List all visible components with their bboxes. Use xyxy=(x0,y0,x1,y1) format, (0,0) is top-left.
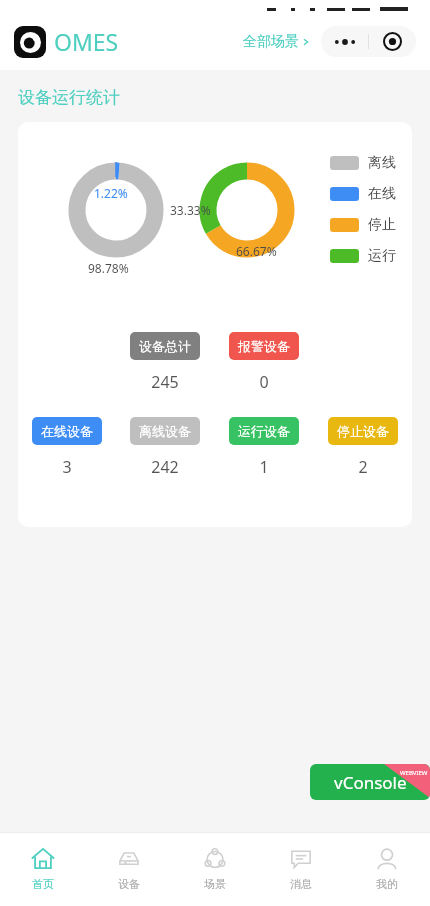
staticText: WEBVIEW xyxy=(400,769,428,777)
staticText: 全部场景 xyxy=(243,33,299,51)
button[interactable]: 报警设备 xyxy=(214,332,313,393)
staticText: vConsole xyxy=(334,771,407,794)
button[interactable]: 在线设备 xyxy=(18,417,116,478)
staticText: 我的 xyxy=(376,877,398,891)
button[interactable]: 运行设备 xyxy=(214,417,313,478)
staticText: 停止设备 xyxy=(337,423,389,439)
staticText: 2 xyxy=(358,456,368,478)
staticText: 离线设备 xyxy=(139,423,191,439)
staticText: 运行设备 xyxy=(238,423,290,439)
staticText: 设备运行统计 xyxy=(18,87,120,108)
staticText: OMES xyxy=(54,26,119,57)
button[interactable]: 设备总计 xyxy=(116,332,214,393)
staticText: 消息 xyxy=(290,877,312,891)
button[interactable]: 离线设备 xyxy=(116,417,214,478)
staticText: 设备总计 xyxy=(139,338,191,354)
staticText: 242 xyxy=(151,456,179,478)
staticText: 在线设备 xyxy=(41,423,93,439)
staticText: 98.78% xyxy=(88,260,129,276)
staticText: 33.33% xyxy=(170,202,211,218)
button[interactable]: 首页 xyxy=(0,832,86,906)
staticText: 停止 xyxy=(368,216,396,234)
staticText: 在线 xyxy=(368,185,396,203)
button[interactable]: More options xyxy=(321,26,368,57)
button[interactable]: vConsole xyxy=(310,764,430,800)
button[interactable]: 我的 xyxy=(344,832,430,906)
staticText: 245 xyxy=(151,371,179,393)
button[interactable]: 设备 xyxy=(86,832,172,906)
staticText: 设备 xyxy=(118,877,140,891)
staticText: 报警设备 xyxy=(238,338,290,354)
staticText: 66.67% xyxy=(236,243,277,259)
staticText: 3 xyxy=(62,456,72,478)
button[interactable]: 停止设备 xyxy=(313,417,412,478)
staticText: 1 xyxy=(259,456,269,478)
button[interactable]: 场景 xyxy=(172,832,258,906)
staticText: 首页 xyxy=(32,877,54,891)
button[interactable]: Target xyxy=(369,26,416,57)
staticText: 运行 xyxy=(368,247,396,265)
staticText: 场景 xyxy=(204,877,226,891)
staticText: 0 xyxy=(259,371,269,393)
staticText: 离线 xyxy=(368,154,396,172)
button[interactable]: 消息 xyxy=(258,832,344,906)
button[interactable]: 全部场景 xyxy=(241,27,312,57)
staticText: 1.22% xyxy=(94,185,128,201)
